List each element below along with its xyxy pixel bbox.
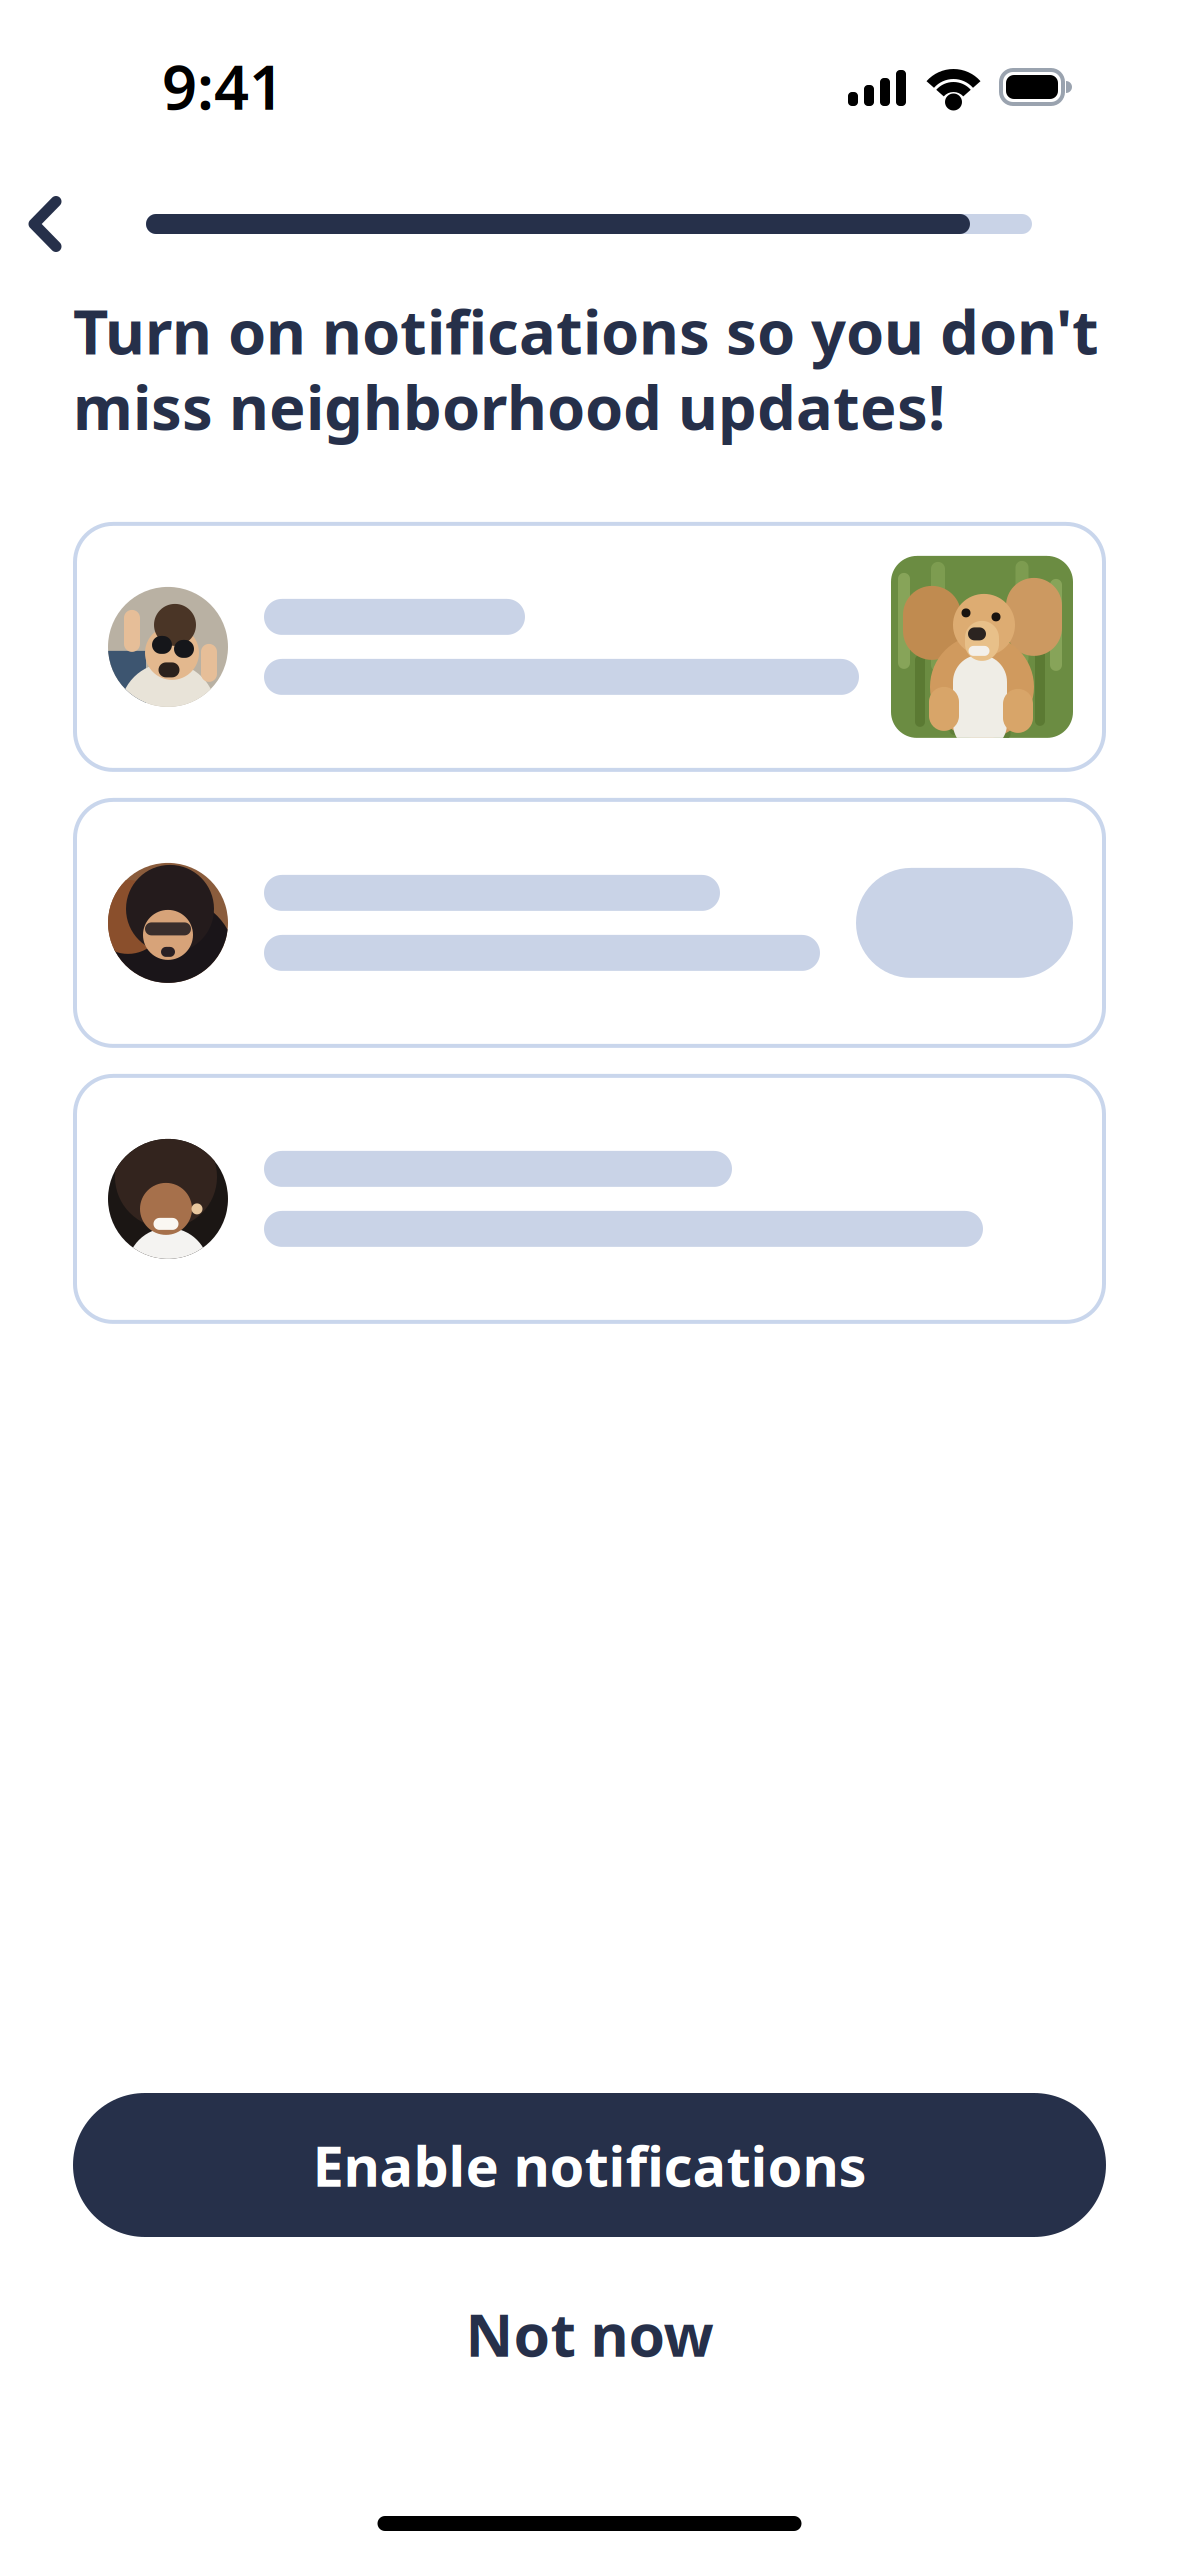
button[interactable]: Not now	[0, 2237, 1179, 2431]
staticText: Enable notifications	[312, 2128, 866, 2202]
staticText: 9:41	[162, 45, 284, 127]
button[interactable]: Enable notifications	[73, 2093, 1106, 2237]
staticText: Turn on notifications so you don't miss …	[73, 290, 1099, 447]
button[interactable]: Back	[0, 180, 90, 268]
staticText: Not now	[465, 2295, 713, 2373]
